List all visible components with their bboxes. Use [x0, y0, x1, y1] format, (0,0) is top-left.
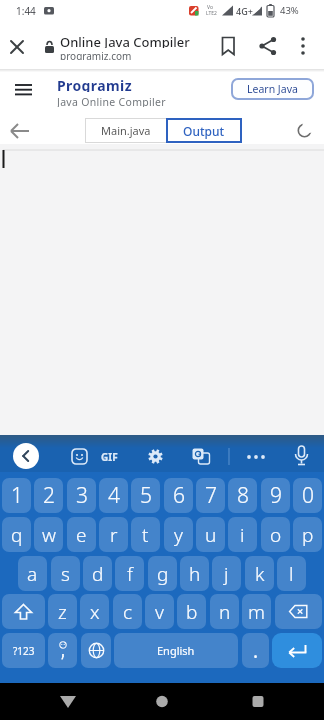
staticText: j — [224, 561, 229, 587]
button[interactable]: m — [242, 594, 271, 629]
button[interactable]: e — [67, 517, 96, 552]
button[interactable]: s — [51, 556, 80, 591]
button[interactable]: v — [145, 594, 174, 629]
button[interactable]: 8 — [228, 478, 257, 513]
staticText: o — [270, 522, 282, 548]
button[interactable]: o — [261, 517, 290, 552]
button[interactable]: Output — [166, 118, 242, 143]
button[interactable]: b — [177, 594, 206, 629]
button[interactable]: h — [180, 556, 209, 591]
staticText: 1 — [11, 481, 23, 510]
button[interactable]: 6 — [164, 478, 193, 513]
button[interactable]: English — [114, 633, 238, 668]
button[interactable] — [13, 443, 39, 469]
button[interactable]: y — [164, 517, 193, 552]
button[interactable]: Learn Java — [231, 78, 314, 100]
button[interactable] — [293, 118, 317, 143]
button[interactable] — [146, 687, 178, 715]
button[interactable]: f — [115, 556, 144, 591]
button[interactable] — [48, 633, 77, 668]
button[interactable]: c — [113, 594, 142, 629]
button[interactable]: 3 — [67, 478, 96, 513]
staticText: a — [27, 561, 38, 587]
staticText: 7 — [205, 481, 217, 510]
button[interactable]: 0 — [293, 478, 322, 513]
button[interactable]: g — [148, 556, 177, 591]
button[interactable] — [8, 78, 40, 102]
button[interactable]: u — [196, 517, 225, 552]
staticText: t — [142, 522, 149, 548]
button[interactable]: d — [83, 556, 112, 591]
button[interactable] — [81, 633, 111, 668]
staticText: y — [174, 522, 183, 548]
staticText: Java Online Compiler — [57, 95, 166, 107]
button[interactable]: 7 — [196, 478, 225, 513]
button[interactable]: 1 — [2, 478, 31, 513]
button[interactable] — [147, 448, 164, 465]
button[interactable]: 5 — [131, 478, 160, 513]
staticText: m — [248, 599, 265, 625]
button[interactable]: w — [34, 517, 63, 552]
staticText: 6 — [173, 481, 185, 510]
button[interactable]: z — [48, 594, 77, 629]
button[interactable]: i — [228, 517, 257, 552]
button[interactable]: j — [212, 556, 241, 591]
button[interactable]: ?123 — [2, 633, 45, 668]
button[interactable] — [257, 35, 279, 57]
staticText: p — [302, 522, 314, 548]
staticText: z — [58, 599, 67, 625]
staticText: 9 — [270, 481, 282, 510]
staticText: v — [155, 599, 164, 625]
button[interactable] — [242, 687, 274, 715]
button[interactable]: q — [2, 517, 31, 552]
button[interactable]: n — [210, 594, 239, 629]
staticText: u — [205, 522, 217, 548]
staticText: English — [157, 643, 195, 658]
button[interactable]: Main.java — [85, 118, 167, 143]
staticText: x — [90, 599, 100, 625]
button[interactable] — [6, 36, 28, 58]
button[interactable] — [292, 34, 314, 58]
button[interactable] — [293, 445, 310, 467]
staticText: k — [255, 561, 265, 587]
staticText: Vo — [207, 4, 213, 11]
staticText: programiz.com — [60, 49, 132, 60]
button[interactable]: 4 — [99, 478, 128, 513]
button[interactable]: GIF — [97, 449, 121, 464]
staticText: f — [127, 561, 133, 587]
staticText: Main.java — [101, 123, 151, 138]
button[interactable]: l — [277, 556, 306, 591]
staticText: q — [11, 522, 23, 548]
staticText: g — [157, 561, 169, 587]
button[interactable]: 2 — [34, 478, 63, 513]
button[interactable] — [6, 118, 34, 144]
button[interactable] — [272, 633, 322, 668]
button[interactable]: t — [131, 517, 160, 552]
button[interactable] — [245, 449, 267, 464]
button[interactable]: a — [18, 556, 47, 591]
button[interactable]: x — [80, 594, 109, 629]
button[interactable] — [192, 448, 210, 465]
button[interactable] — [2, 594, 45, 629]
button[interactable]: r — [99, 517, 128, 552]
staticText: 1:44 — [16, 4, 36, 18]
staticText: ?123 — [13, 644, 35, 658]
button[interactable]: 9 — [261, 478, 290, 513]
button[interactable] — [52, 687, 84, 715]
staticText: . — [253, 638, 259, 664]
button[interactable]: p — [293, 517, 322, 552]
button[interactable] — [217, 35, 239, 57]
staticText: Online Java Compiler — [60, 33, 190, 48]
button[interactable]: k — [245, 556, 274, 591]
staticText: h — [189, 561, 201, 587]
staticText: Learn Java — [247, 82, 298, 96]
button[interactable] — [275, 594, 322, 629]
button[interactable]: . — [242, 633, 269, 668]
button[interactable] — [71, 448, 88, 465]
staticText: 8 — [237, 481, 249, 510]
staticText: e — [76, 522, 87, 548]
staticText: r — [110, 522, 118, 548]
staticText: 3 — [76, 481, 88, 510]
staticText: 5 — [140, 481, 152, 510]
staticText: b — [186, 599, 198, 625]
